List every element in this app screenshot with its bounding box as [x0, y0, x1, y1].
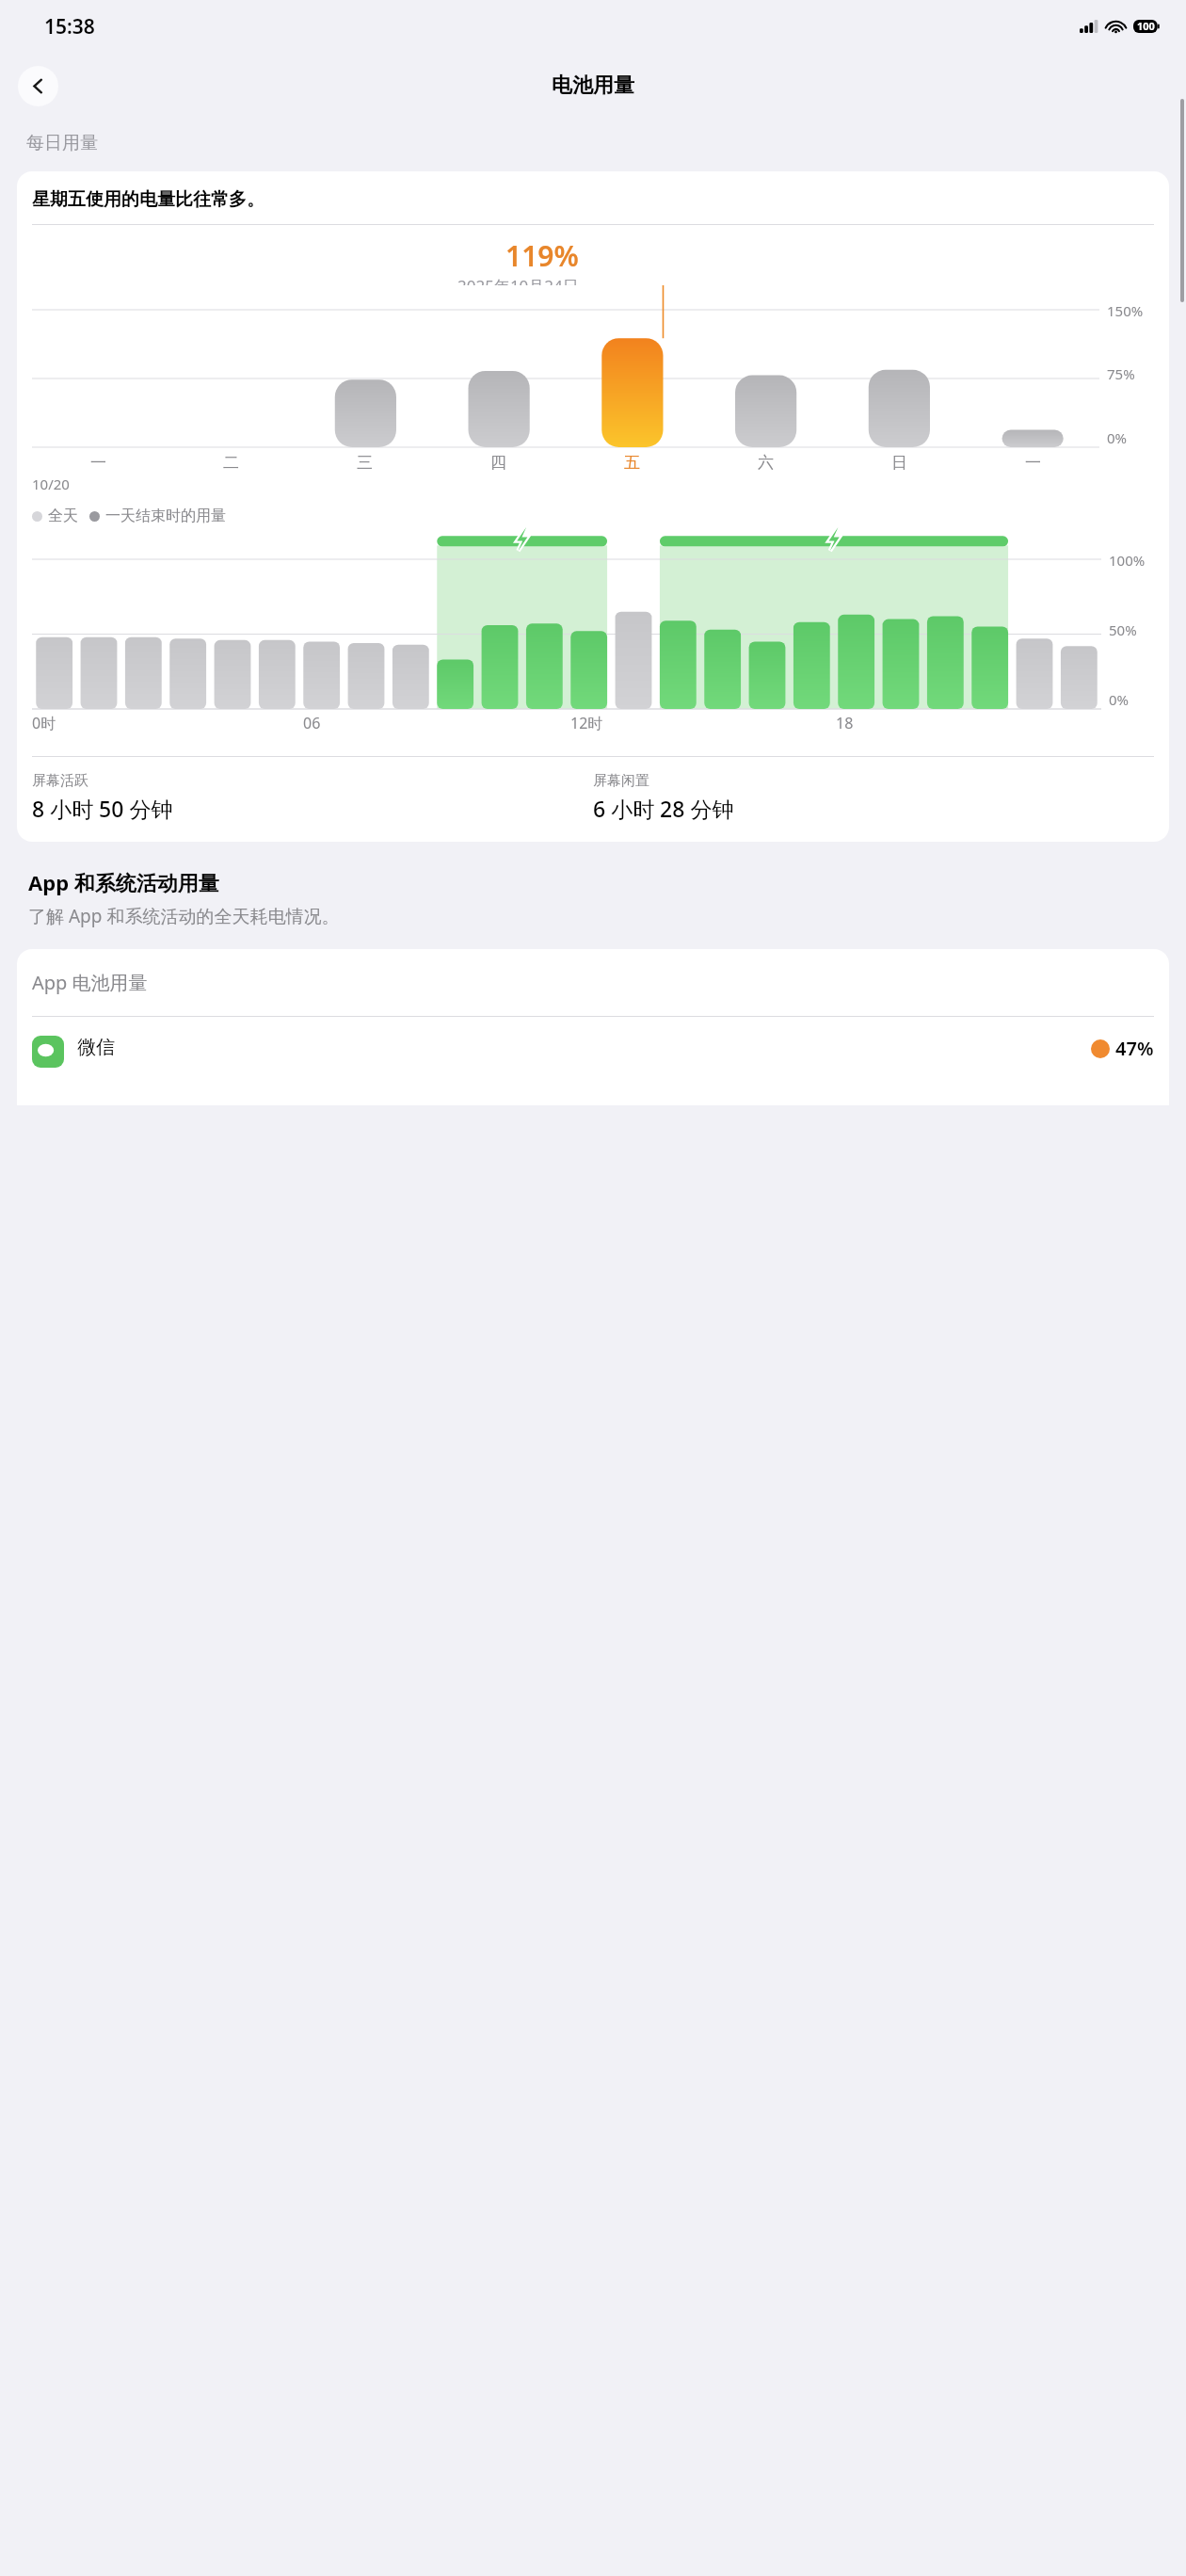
- staticText: 12时: [570, 713, 603, 733]
- staticText: 六: [758, 453, 774, 473]
- staticText: 屏幕活跃: [32, 772, 88, 790]
- staticText: 一天结束时的用量: [105, 507, 226, 525]
- staticText: 屏幕闲置: [593, 772, 649, 790]
- staticText: 10/20: [32, 475, 70, 493]
- button[interactable]: 星期五使用的电量比往常多。: [17, 171, 1169, 842]
- staticText: App 和系统活动用量: [28, 868, 219, 896]
- staticText: 0%: [1107, 428, 1128, 447]
- staticText: 电池用量: [552, 72, 634, 99]
- button[interactable]: App 电池用量: [17, 949, 1169, 1105]
- staticText: 150%: [1107, 301, 1144, 320]
- staticText: 47%: [1115, 1036, 1154, 1061]
- button[interactable]: 返回: [18, 66, 58, 106]
- staticText: 了解 App 和系统活动的全天耗电情况。: [28, 904, 340, 928]
- staticText: 微信: [77, 1036, 115, 1059]
- staticText: 五: [624, 453, 640, 473]
- staticText: 一: [90, 453, 106, 473]
- staticText: 15:38: [44, 13, 95, 40]
- staticText: 0%: [1109, 690, 1130, 709]
- staticText: 50%: [1109, 620, 1137, 639]
- staticText: 6 小时 28 分钟: [593, 794, 734, 823]
- staticText: 2025年10月24日: [457, 275, 579, 285]
- staticText: 0时: [32, 713, 56, 733]
- staticText: 星期五使用的电量比往常多。: [32, 188, 264, 211]
- staticText: 8 小时 50 分钟: [32, 794, 173, 823]
- staticText: 四: [490, 453, 506, 473]
- staticText: 119%: [505, 236, 579, 275]
- staticText: 18: [836, 713, 854, 733]
- staticText: 全天: [48, 507, 78, 525]
- staticText: 一: [1025, 453, 1041, 473]
- staticText: 每日用量: [26, 132, 98, 154]
- staticText: App 电池用量: [32, 970, 148, 995]
- staticText: 100%: [1109, 551, 1146, 570]
- staticText: 75%: [1107, 364, 1135, 383]
- staticText: 06: [303, 713, 321, 733]
- staticText: 100: [1137, 19, 1155, 33]
- staticText: 日: [891, 453, 907, 473]
- staticText: 二: [223, 453, 239, 473]
- staticText: 三: [357, 453, 373, 473]
